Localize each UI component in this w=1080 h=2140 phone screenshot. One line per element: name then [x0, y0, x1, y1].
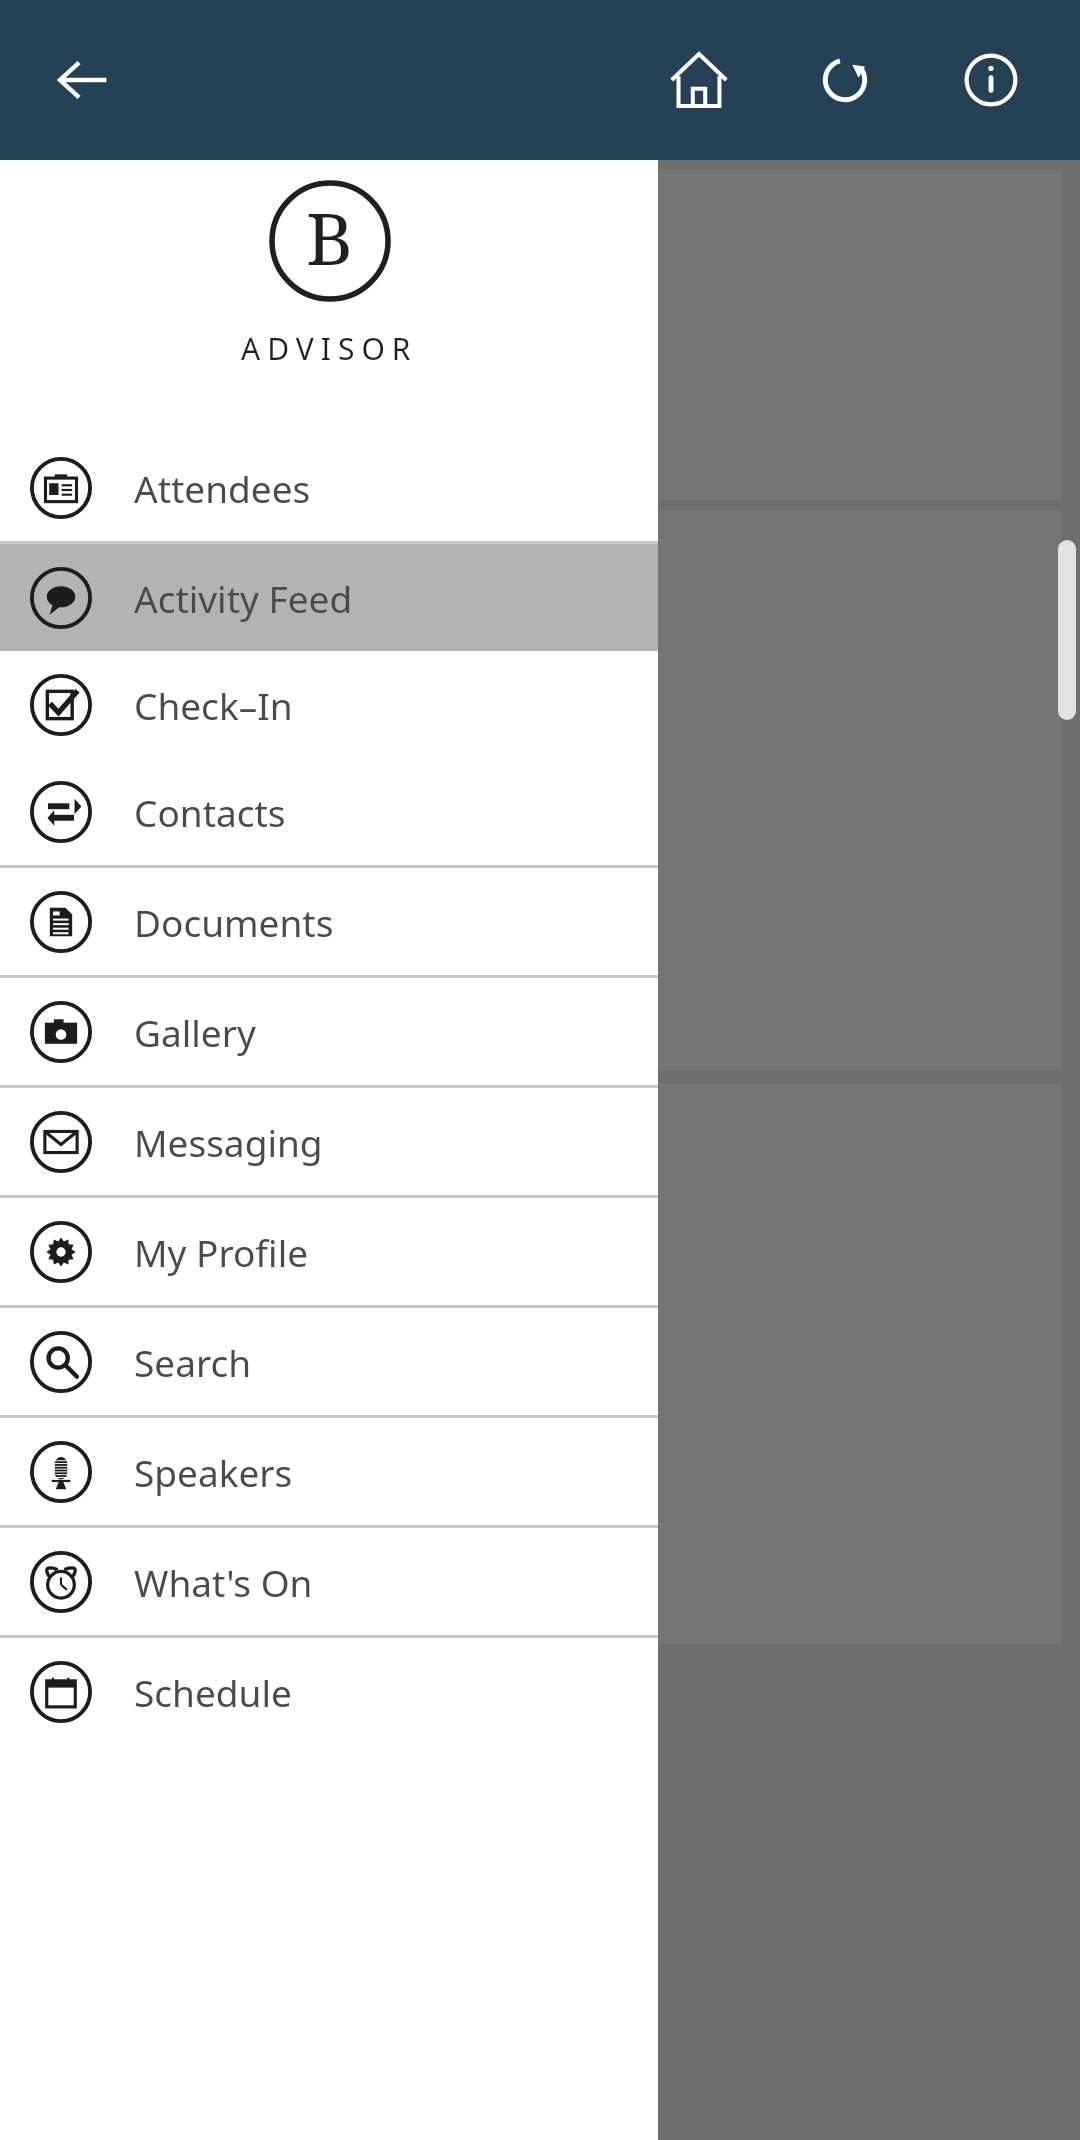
staticText: Activity Feed — [134, 573, 353, 623]
staticText: Documents — [134, 897, 334, 947]
button[interactable]: Messaging — [0, 1088, 658, 1195]
button[interactable]: Attendees — [0, 434, 658, 541]
button[interactable]: My Profile — [0, 1198, 658, 1305]
staticText: ADVISOR — [241, 328, 418, 369]
staticText: Attendees — [134, 463, 311, 513]
staticText: Speakers — [134, 1447, 293, 1497]
button[interactable]: Documents — [0, 868, 658, 975]
staticText: Gallery — [134, 1007, 256, 1057]
button[interactable]: Home — [644, 25, 754, 135]
staticText: B — [306, 188, 354, 286]
staticText: My Profile — [134, 1227, 309, 1277]
staticText: Search — [134, 1337, 252, 1387]
button[interactable]: Speakers — [0, 1418, 658, 1525]
staticText: Explore — [298, 1527, 455, 1584]
staticText: Posted 5 days ago — [58, 1096, 348, 1142]
button[interactable]: What's On — [0, 1528, 658, 1635]
staticText: Posted 3 days ago — [58, 436, 348, 482]
staticText: Contacts — [134, 787, 286, 837]
staticText: Check–In — [134, 680, 293, 730]
staticText: What's On — [134, 1557, 313, 1607]
button[interactable]: Check–In — [0, 651, 658, 758]
button[interactable]: Back — [34, 32, 130, 128]
button[interactable]: Refresh — [790, 25, 900, 135]
staticText: Messaging — [134, 1117, 323, 1167]
staticText: Check it out in — [58, 954, 286, 1000]
button[interactable]: Search — [0, 1308, 658, 1415]
button[interactable]: Information — [936, 25, 1046, 135]
button[interactable]: Contacts — [0, 758, 658, 865]
button[interactable]: Schedule — [0, 1638, 658, 1745]
button[interactable]: Activity Feed — [0, 544, 658, 651]
button[interactable]: Gallery — [0, 978, 658, 1085]
staticText: Schedule — [134, 1667, 292, 1717]
